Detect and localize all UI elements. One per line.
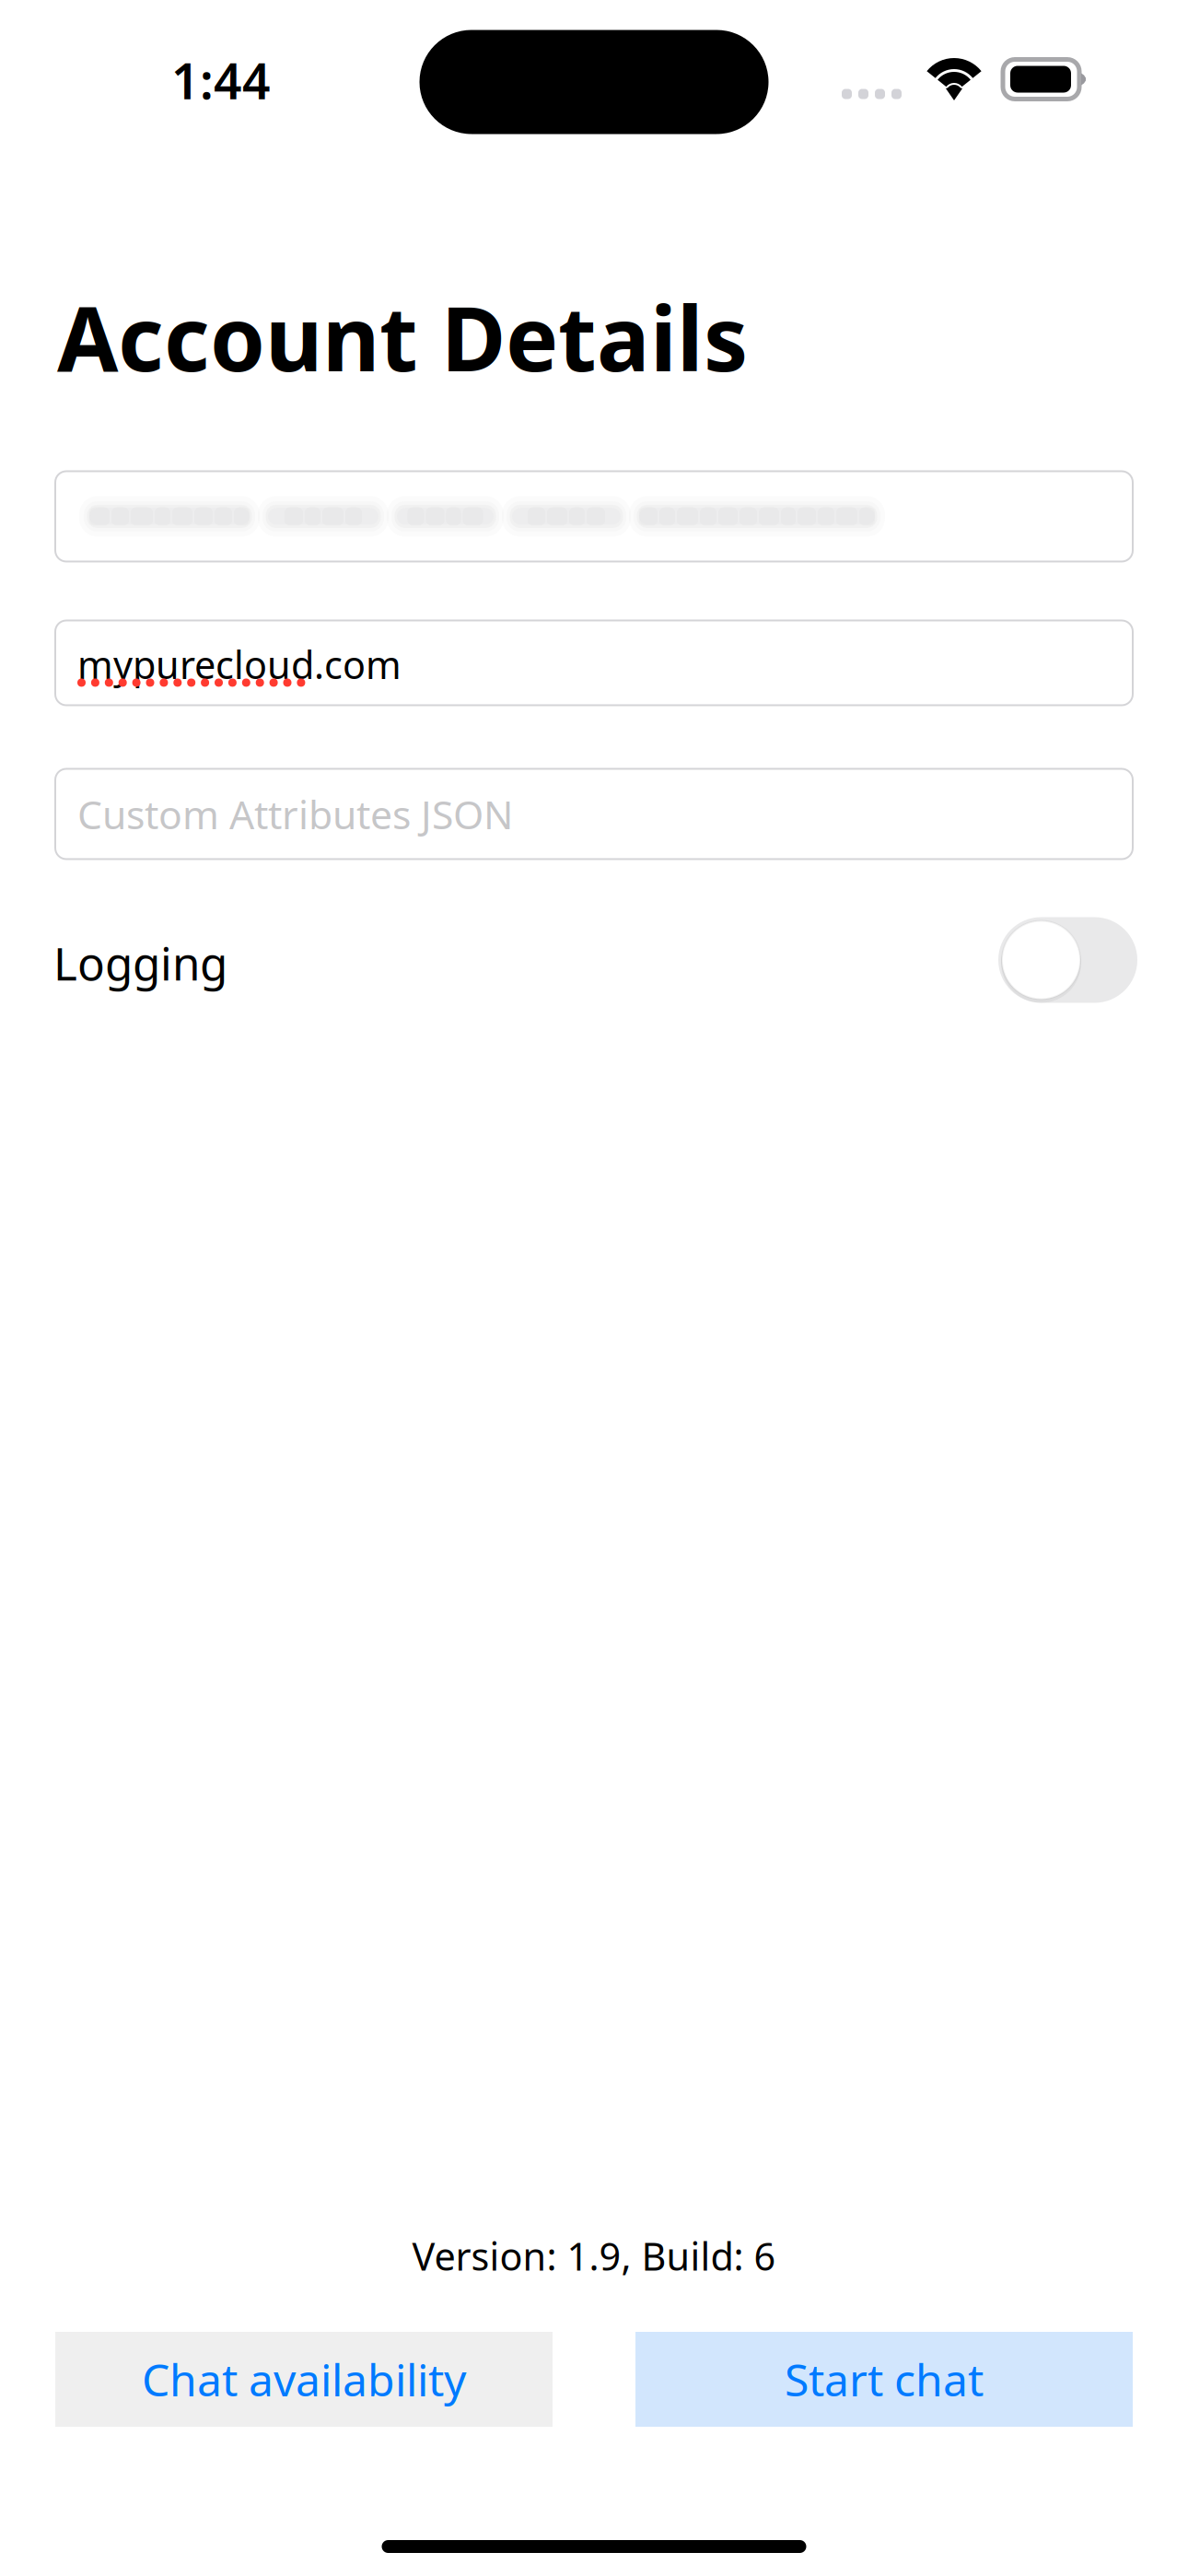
staticText: Account Details	[57, 278, 748, 396]
staticText: Start chat	[785, 2350, 984, 2409]
staticText: Custom Attributes JSON	[77, 788, 513, 840]
button[interactable]: Start chat	[635, 2332, 1133, 2427]
staticText: Logging	[53, 933, 227, 993]
button[interactable]: mypurecloud.com	[0, 621, 1188, 705]
staticText: Version: 1.9, Build: 6	[412, 2231, 776, 2281]
staticText: 1:44	[171, 48, 271, 113]
button[interactable]: Custom Attributes JSON	[0, 769, 1188, 859]
staticText: mypurecloud.com	[77, 639, 402, 690]
button[interactable]: Logging	[0, 917, 1188, 1003]
staticText: Chat availability	[142, 2350, 466, 2409]
button[interactable]: Deployment ID	[0, 471, 1188, 562]
button[interactable]: Chat availability	[55, 2332, 553, 2427]
